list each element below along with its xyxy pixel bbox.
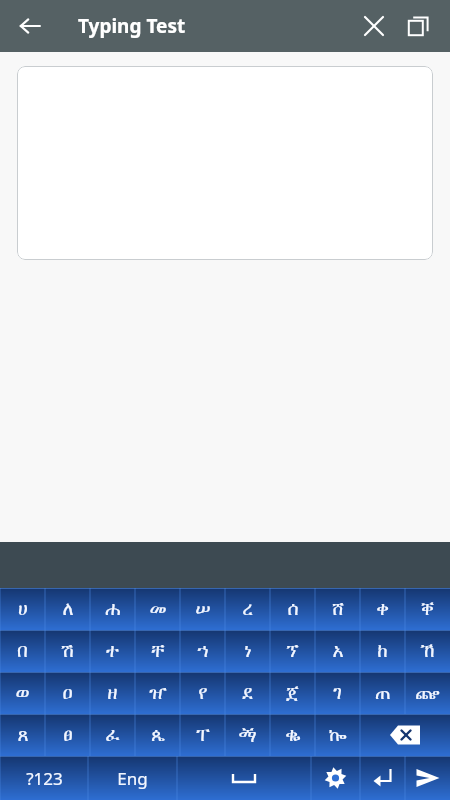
button[interactable]: ኸ	[405, 630, 450, 672]
staticText: ረ	[242, 600, 253, 619]
staticText: ቐ	[421, 600, 434, 619]
button[interactable]: ፐ	[180, 714, 225, 756]
button[interactable]: ተ	[90, 630, 135, 672]
staticText: ኸ	[420, 642, 435, 661]
staticText: ሸ	[332, 600, 344, 619]
button[interactable]: ፈ	[90, 714, 135, 756]
staticText: ቸ	[151, 642, 165, 661]
button[interactable]: ቈ	[270, 714, 315, 756]
staticText: ደ	[242, 684, 253, 703]
staticText: ሰ	[287, 600, 299, 619]
button[interactable]: ነ	[225, 630, 270, 672]
staticText: ኘ	[286, 642, 299, 661]
staticText: ጬ	[415, 684, 440, 703]
button[interactable]: ቀ	[360, 588, 405, 630]
staticText: ሀ	[18, 600, 28, 619]
button[interactable]: ሀ	[0, 588, 45, 630]
staticText: መ	[149, 600, 167, 619]
button[interactable]: ፙ	[225, 714, 270, 756]
staticText: ቈ	[285, 726, 301, 745]
staticText: ፈ	[105, 726, 120, 745]
staticText: ዐ	[62, 684, 73, 703]
button[interactable]: Eng	[88, 756, 177, 800]
staticText: የ	[198, 684, 208, 703]
staticText: Typing Test	[78, 13, 186, 39]
button[interactable]: ሠ	[180, 588, 225, 630]
staticText: ?123	[26, 767, 63, 790]
button[interactable]: አ	[315, 630, 360, 672]
button[interactable]: Send	[405, 756, 450, 800]
button[interactable]: ኘ	[270, 630, 315, 672]
button[interactable]: ወ	[0, 672, 45, 714]
button[interactable]: ዐ	[45, 672, 90, 714]
button[interactable]: ጸ	[0, 714, 45, 756]
staticText: ዘ	[107, 684, 118, 703]
button[interactable]: Back	[8, 4, 52, 48]
button[interactable]: ደ	[225, 672, 270, 714]
staticText: ሠ	[195, 600, 211, 619]
staticText: ጴ	[151, 726, 165, 745]
staticText: ሽ	[61, 642, 74, 661]
staticText: ፙ	[238, 726, 257, 745]
staticText: ቀ	[376, 600, 389, 619]
button[interactable]: ሰ	[270, 588, 315, 630]
button[interactable]: ከ	[360, 630, 405, 672]
button[interactable]: ቸ	[135, 630, 180, 672]
staticText: ገ	[333, 684, 342, 703]
staticText: ጠ	[375, 684, 391, 703]
staticText: ጸ	[17, 726, 29, 745]
staticText: አ	[332, 642, 344, 661]
button[interactable]: በ	[0, 630, 45, 672]
button[interactable]: ?123	[0, 756, 88, 800]
button[interactable]: ዠ	[135, 672, 180, 714]
staticText: ለ	[62, 600, 74, 619]
button[interactable]: ገ	[315, 672, 360, 714]
button[interactable]: ሐ	[90, 588, 135, 630]
button[interactable]: ረ	[225, 588, 270, 630]
staticText: ጀ	[286, 684, 299, 703]
staticText: ኰ	[328, 726, 347, 745]
staticText: ኀ	[197, 642, 209, 661]
button[interactable]: መ	[135, 588, 180, 630]
button[interactable]: Space	[177, 756, 311, 800]
button[interactable]: ለ	[45, 588, 90, 630]
button[interactable]: Backspace	[360, 714, 450, 756]
button[interactable]: ጴ	[135, 714, 180, 756]
button[interactable]: ጬ	[405, 672, 450, 714]
button[interactable]: ሸ	[315, 588, 360, 630]
button[interactable]: የ	[180, 672, 225, 714]
staticText: ሐ	[105, 600, 121, 619]
staticText: በ	[17, 642, 28, 661]
button[interactable]: ጀ	[270, 672, 315, 714]
button[interactable]: ቐ	[405, 588, 450, 630]
staticText: ተ	[106, 642, 119, 661]
button[interactable]: Close	[352, 4, 396, 48]
button[interactable]: ሽ	[45, 630, 90, 672]
staticText: ከ	[377, 642, 388, 661]
button[interactable]: Copy	[396, 4, 440, 48]
button[interactable]: ጠ	[360, 672, 405, 714]
button[interactable]: ኰ	[315, 714, 360, 756]
staticText: ነ	[244, 642, 252, 661]
staticText: ወ	[15, 684, 30, 703]
button[interactable]: ኀ	[180, 630, 225, 672]
staticText: Eng	[117, 767, 148, 790]
button[interactable]	[17, 66, 433, 260]
button[interactable]: Settings	[311, 756, 360, 800]
staticText: ዠ	[149, 684, 167, 703]
button[interactable]: ፀ	[45, 714, 90, 756]
staticText: ፀ	[63, 726, 73, 745]
button[interactable]: ዘ	[90, 672, 135, 714]
staticText: ፐ	[196, 726, 210, 745]
button[interactable]: Enter	[360, 756, 405, 800]
